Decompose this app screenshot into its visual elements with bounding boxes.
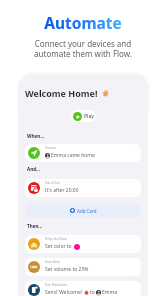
staticText: Set color to: [45, 243, 72, 250]
staticText: Presence: [45, 145, 56, 151]
staticText: Connect your devices and automate them w…: [0, 38, 166, 60]
staticText: Sonos Beam: [45, 259, 60, 265]
staticText: Date & Time: [45, 180, 60, 186]
staticText: Set volume to 25%: [45, 266, 89, 273]
button[interactable]: Play: [71, 110, 96, 122]
staticText: Then...: [27, 223, 43, 229]
staticText: It's after 20:00: [45, 187, 79, 194]
staticText: to: [90, 289, 95, 296]
button[interactable]: Philips Hue Bloom: [25, 235, 141, 253]
staticText: When...: [27, 133, 45, 139]
staticText: Add Card: [77, 208, 97, 214]
staticText: Push Notifications: [45, 282, 67, 288]
button[interactable]: Sonos Beam: [25, 258, 141, 276]
staticText: Play: [84, 113, 94, 120]
staticText: Emma came home: [51, 152, 95, 159]
button[interactable]: Add Card: [25, 203, 141, 218]
staticText: Send 'Welcome!: [45, 289, 83, 296]
button[interactable]: Date & Time: [25, 179, 141, 197]
staticText: And...: [27, 166, 40, 172]
staticText: Emma: [102, 289, 117, 296]
staticText: Welcome Home!: [25, 87, 98, 99]
staticText: Automate: [0, 12, 166, 33]
button[interactable]: Presence: [25, 144, 141, 162]
button[interactable]: Push Notifications: [25, 281, 141, 296]
staticText: Philips Hue Bloom: [45, 236, 67, 242]
